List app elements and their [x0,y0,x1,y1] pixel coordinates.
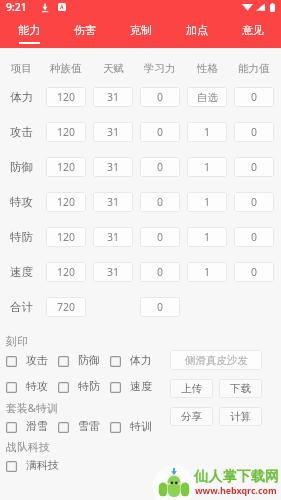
button[interactable]: 120 [46,122,86,142]
button[interactable]: 31 [93,87,133,107]
staticText: A [60,4,64,11]
staticText: 0 [251,265,258,279]
staticText: 0 [251,230,258,244]
button[interactable]: 上传 [170,379,213,398]
button[interactable]: 能力 [0,18,57,48]
button[interactable]: 0 [234,227,274,247]
staticText: 防御 [10,160,33,174]
staticText: 0 [157,265,164,279]
button[interactable]: 伤害 [57,18,113,48]
button[interactable]: 0 [140,297,180,317]
button[interactable]: 0 [140,227,180,247]
staticText: 滑雪 [26,420,48,434]
staticText: 体力 [10,90,33,104]
button[interactable]: 下载 [219,379,262,398]
button[interactable]: 0 [234,262,274,282]
staticText: 能力值 [238,62,270,74]
staticText: 31 [107,195,120,209]
button[interactable]: 克制 [113,18,169,48]
button[interactable]: 1 [187,192,227,212]
staticText: 下载 [230,382,251,395]
staticText: 120 [57,230,76,244]
button[interactable]: 防御 [58,354,110,368]
button[interactable]: 31 [93,157,133,177]
button[interactable]: 1 [187,122,227,142]
button[interactable]: 加点 [169,18,225,48]
staticText: 120 [57,125,76,139]
staticText: 1 [204,125,211,139]
button[interactable]: 雪雷 [58,420,110,434]
staticText: 720 [57,300,76,314]
staticText: 仙人掌下载网 [194,467,280,485]
staticText: 雪雷 [78,420,100,434]
button[interactable]: 特攻 [6,380,58,394]
button[interactable]: 满科技 [6,459,66,473]
button[interactable]: 自选 [187,87,227,107]
staticText: 0 [157,195,164,209]
staticText: 分享 [181,410,202,423]
staticText: 特防 [10,230,33,244]
button[interactable]: 计算 [219,407,262,426]
staticText: 满科技 [26,459,59,473]
button[interactable]: 1 [187,157,227,177]
staticText: 0 [251,195,258,209]
button[interactable]: 31 [93,227,133,247]
button[interactable]: 31 [93,122,133,142]
staticText: 0 [157,300,164,314]
button[interactable]: 0 [140,87,180,107]
staticText: 防御 [78,354,100,368]
staticText: 120 [57,160,76,174]
staticText: 120 [57,265,76,279]
button[interactable]: 攻击 [6,354,58,368]
button[interactable]: 31 [93,262,133,282]
button[interactable]: 0 [234,87,274,107]
staticText: 战队科技 [6,441,50,455]
button[interactable]: 120 [46,87,86,107]
button[interactable]: 0 [234,157,274,177]
staticText: 种族值 [50,62,82,74]
button[interactable]: 0 [140,157,180,177]
button[interactable]: 1 [187,227,227,247]
button[interactable]: 分享 [170,407,213,426]
staticText: 0 [157,160,164,174]
button[interactable]: 1 [187,262,227,282]
staticText: 9:21 [6,0,27,14]
staticText: 速度 [130,380,152,394]
staticText: 体力 [130,354,152,368]
staticText: 0 [251,160,258,174]
staticText: 特攻 [26,380,48,394]
staticText: 克制 [130,23,152,37]
button[interactable]: 特防 [58,380,110,394]
staticText: 侧滑真皮沙发 [185,354,248,367]
staticText: 31 [107,125,120,139]
button[interactable]: 滑雪 [6,420,58,434]
staticText: 天赋 [103,62,124,74]
button[interactable]: 120 [46,227,86,247]
button[interactable]: 侧滑真皮沙发 [170,350,262,370]
staticText: 加点 [186,23,208,37]
button[interactable]: 0 [140,262,180,282]
button[interactable]: 体力 [110,354,162,368]
button[interactable]: 120 [46,262,86,282]
button[interactable]: 速度 [110,380,162,394]
button[interactable]: 31 [93,192,133,212]
button[interactable]: 0 [140,192,180,212]
staticText: 特攻 [10,195,33,209]
staticText: 计算 [230,410,251,423]
button[interactable]: 120 [46,157,86,177]
staticText: 31 [107,265,120,279]
button[interactable]: 0 [140,122,180,142]
staticText: 性格 [197,62,218,74]
staticText: 学习力 [144,62,176,74]
button[interactable]: 720 [46,297,86,317]
button[interactable]: 0 [234,192,274,212]
staticText: 上传 [181,382,202,395]
staticText: 特防 [78,380,100,394]
staticText: 刻印 [6,335,28,349]
staticText: 特训 [130,420,152,434]
button[interactable]: 0 [234,122,274,142]
button[interactable]: 意见 [225,18,281,48]
staticText: 套装&特训 [6,400,58,415]
button[interactable]: 特训 [110,420,162,434]
button[interactable]: 120 [46,192,86,212]
